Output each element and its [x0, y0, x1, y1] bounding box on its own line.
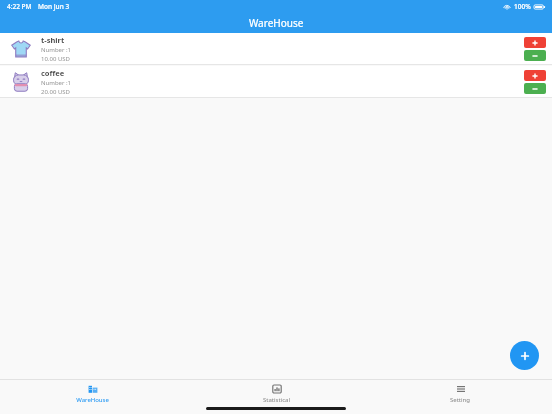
button[interactable]: Decrease: [524, 50, 546, 61]
staticText: Setting: [450, 396, 470, 404]
button[interactable]: Decrease: [524, 83, 546, 94]
staticText: 4:22 PM: [7, 2, 32, 11]
button[interactable]: Statistical: [184, 380, 368, 404]
button[interactable]: Setting: [368, 380, 552, 404]
button[interactable]: coffee: [0, 66, 552, 98]
staticText: Number :1: [41, 46, 72, 54]
button[interactable]: Add item: [510, 341, 539, 370]
button[interactable]: t-shirt: [0, 33, 552, 65]
button[interactable]: Increase: [524, 70, 546, 81]
button[interactable]: WareHouse: [0, 380, 184, 404]
staticText: Number :1: [41, 79, 72, 87]
staticText: 10.00 USD: [41, 55, 70, 63]
staticText: coffee: [41, 68, 65, 78]
staticText: t-shirt: [41, 35, 65, 45]
staticText: Statistical: [263, 396, 290, 404]
staticText: WareHouse: [76, 396, 109, 404]
staticText: Mon Jun 3: [38, 2, 70, 11]
staticText: WareHouse: [249, 16, 304, 30]
button[interactable]: Increase: [524, 37, 546, 48]
staticText: 100%: [514, 2, 531, 11]
staticText: 20.00 USD: [41, 88, 70, 96]
